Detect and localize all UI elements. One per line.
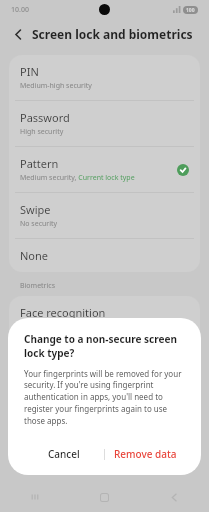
button[interactable]: Back (8, 24, 28, 44)
staticText: Change to a non-secure screen lock type? (24, 332, 185, 360)
staticText: Screen lock and biometrics (32, 26, 193, 42)
staticText: None (20, 248, 49, 263)
button[interactable]: Pattern (9, 147, 200, 193)
staticText: Swipe (20, 202, 51, 217)
staticText: Remove data (114, 447, 177, 461)
button[interactable] (9, 342, 200, 376)
staticText: Face recognition (20, 305, 106, 320)
staticText: Pattern (20, 156, 59, 171)
staticText: Medium-high security (20, 81, 92, 91)
staticText: 100 (186, 7, 195, 14)
button[interactable]: Password (9, 101, 200, 147)
button[interactable]: PIN (9, 55, 200, 101)
button[interactable]: Remove data (105, 441, 185, 467)
button[interactable]: Cancel (24, 441, 104, 467)
staticText: Medium security, Current lock type (20, 173, 135, 183)
button[interactable]: None (9, 239, 200, 272)
staticText: High security (20, 127, 64, 137)
button[interactable]: Swipe (9, 193, 200, 239)
staticText: Your fingerprints will be removed for yo… (24, 368, 185, 427)
staticText: Biometrics (20, 281, 56, 291)
staticText: 10.00 (11, 5, 29, 15)
staticText: Password (20, 110, 70, 125)
button[interactable]: Face recognition (9, 296, 200, 342)
staticText: Cancel (48, 447, 80, 461)
staticText: PIN (20, 64, 39, 79)
staticText: No security (20, 219, 58, 229)
